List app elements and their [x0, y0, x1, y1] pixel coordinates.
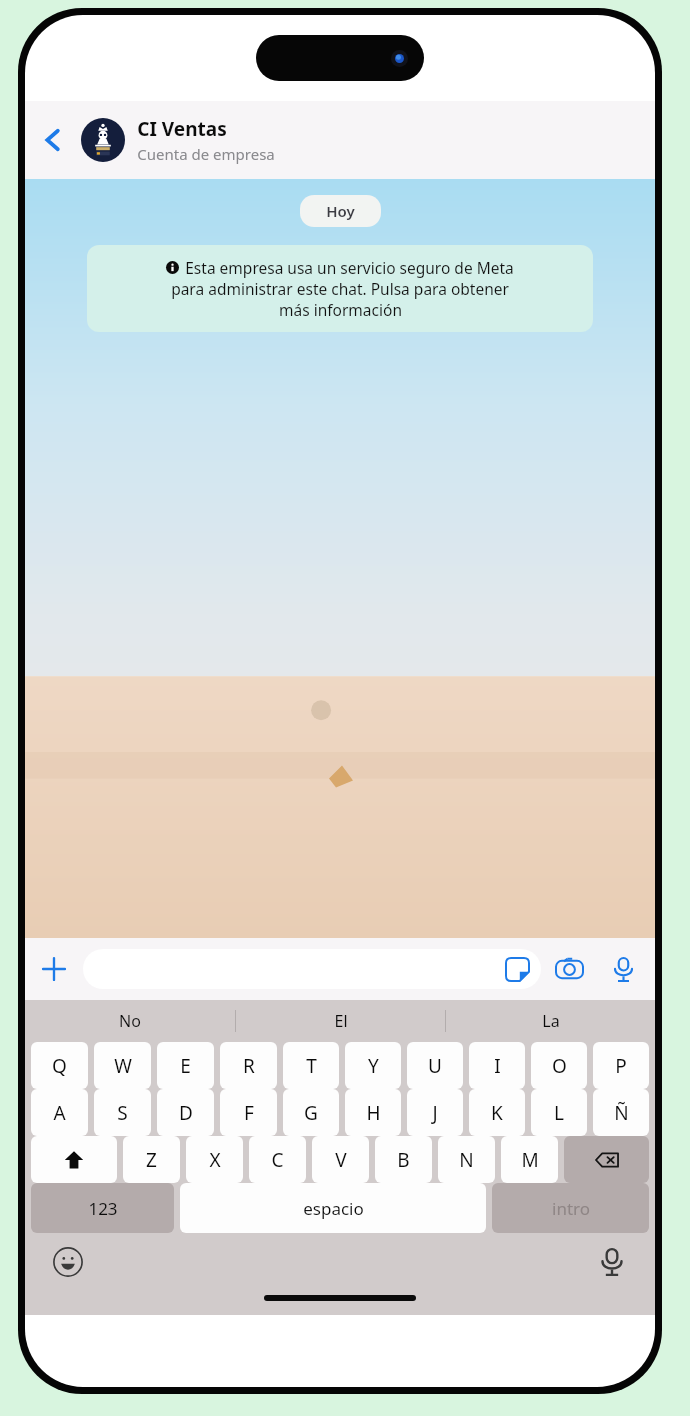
button[interactable]: Dictado [591, 1241, 633, 1283]
button[interactable]: R [220, 1042, 277, 1089]
button[interactable]: La [446, 1000, 655, 1042]
button[interactable] [83, 949, 541, 989]
staticText: F [244, 1100, 254, 1126]
button[interactable]: No [25, 1000, 235, 1042]
staticText: K [491, 1100, 503, 1126]
button[interactable]: I [469, 1042, 525, 1089]
button[interactable]: Cámara [541, 938, 597, 1000]
button[interactable]: 123 [31, 1183, 174, 1233]
button[interactable]: W [94, 1042, 151, 1089]
staticText: A [53, 1100, 66, 1126]
button[interactable]: B [375, 1136, 432, 1183]
staticText: Q [52, 1053, 67, 1079]
button[interactable]: K [469, 1089, 525, 1136]
button[interactable]: Emoji [47, 1241, 89, 1283]
staticText: U [428, 1053, 442, 1079]
button[interactable]: Atrás [25, 101, 81, 179]
button[interactable]: Z [123, 1136, 180, 1183]
button[interactable]: M [501, 1136, 558, 1183]
button[interactable]: CI Ventas [81, 101, 641, 179]
staticText: C [271, 1147, 284, 1173]
staticText: El [334, 1010, 348, 1032]
staticText: Esta empresa usa un servicio seguro de M… [185, 257, 514, 278]
staticText: L [554, 1100, 564, 1126]
staticText: Ñ [614, 1100, 629, 1126]
staticText: R [243, 1053, 255, 1079]
button[interactable]: Ñ [593, 1089, 649, 1136]
staticText: B [397, 1147, 410, 1173]
button[interactable]: J [407, 1089, 463, 1136]
staticText: M [521, 1147, 539, 1173]
staticText: D [179, 1100, 193, 1126]
staticText: O [552, 1053, 567, 1079]
staticText: S [117, 1100, 128, 1126]
button[interactable]: Hoy [300, 195, 381, 227]
button[interactable]: Q [31, 1042, 88, 1089]
button[interactable]: H [345, 1089, 401, 1136]
staticText: para administrar este chat. Pulsa para o… [171, 278, 509, 299]
button[interactable]: S [94, 1089, 151, 1136]
button[interactable]: P [593, 1042, 649, 1089]
staticText: G [304, 1100, 318, 1126]
staticText: intro [552, 1197, 590, 1220]
staticText: CI Ventas [137, 116, 227, 142]
staticText: Cuenta de empresa [137, 144, 275, 164]
button[interactable]: T [283, 1042, 339, 1089]
button[interactable]: F [220, 1089, 277, 1136]
staticText: Z [146, 1147, 157, 1173]
staticText: J [432, 1100, 438, 1126]
staticText: H [366, 1100, 381, 1126]
staticText: X [209, 1147, 221, 1173]
button[interactable]: L [531, 1089, 587, 1136]
button[interactable]: V [312, 1136, 369, 1183]
staticText: P [615, 1053, 627, 1079]
staticText: más información [279, 299, 402, 320]
button[interactable]: U [407, 1042, 463, 1089]
button[interactable]: Esta empresa usa un servicio seguro de M… [87, 245, 593, 332]
staticText: espacio [303, 1197, 364, 1220]
button[interactable]: O [531, 1042, 587, 1089]
button[interactable]: Mensaje de voz [597, 938, 649, 1000]
button[interactable]: Borrar [564, 1136, 649, 1183]
staticText: W [114, 1053, 132, 1079]
button[interactable]: Y [345, 1042, 401, 1089]
staticText: 123 [88, 1197, 118, 1220]
button[interactable]: D [157, 1089, 214, 1136]
button[interactable]: Adjuntar [25, 938, 83, 1000]
staticText: No [119, 1010, 141, 1032]
button[interactable]: intro [492, 1183, 649, 1233]
button[interactable]: A [31, 1089, 88, 1136]
button[interactable]: G [283, 1089, 339, 1136]
staticText: T [306, 1053, 317, 1079]
button[interactable]: El [236, 1000, 445, 1042]
staticText: La [542, 1010, 560, 1032]
button[interactable]: N [438, 1136, 495, 1183]
staticText: Hoy [326, 201, 355, 221]
staticText: E [180, 1053, 191, 1079]
button[interactable]: C [249, 1136, 306, 1183]
button[interactable]: E [157, 1042, 214, 1089]
staticText: N [459, 1147, 474, 1173]
staticText: Y [368, 1053, 379, 1079]
staticText: I [494, 1053, 501, 1079]
button[interactable]: Mayúsculas [31, 1136, 117, 1183]
staticText: V [335, 1147, 347, 1173]
button[interactable]: X [186, 1136, 243, 1183]
button[interactable]: espacio [180, 1183, 486, 1233]
